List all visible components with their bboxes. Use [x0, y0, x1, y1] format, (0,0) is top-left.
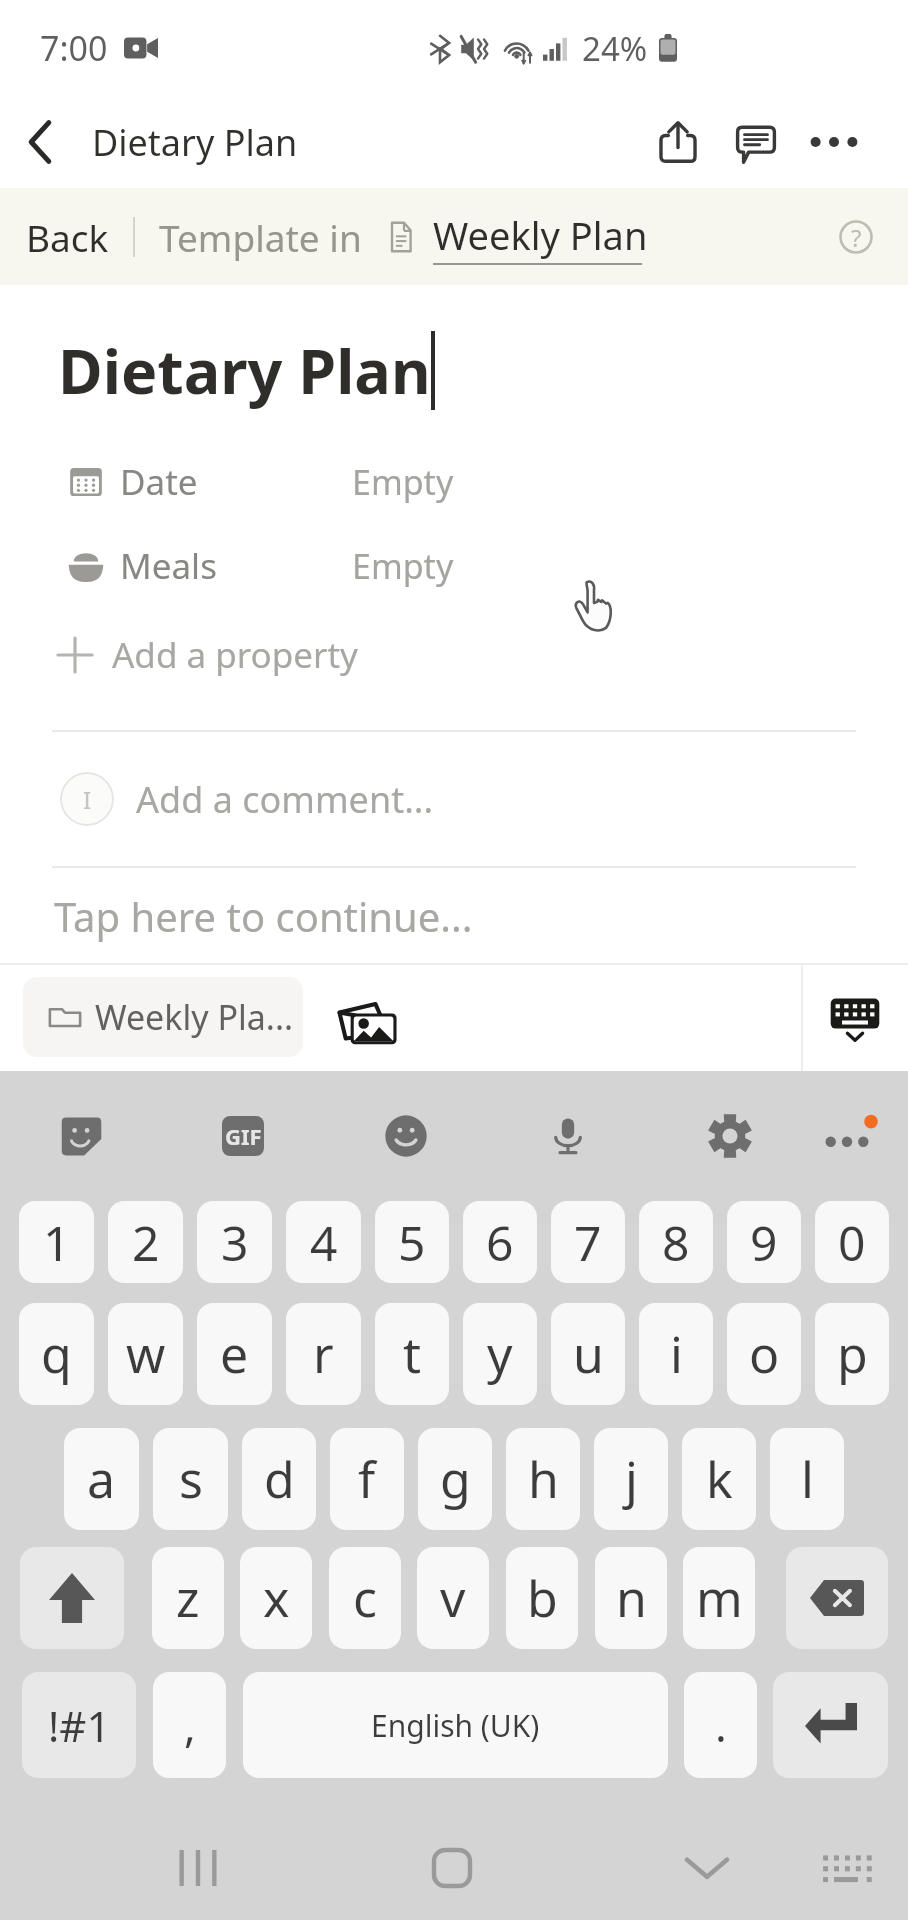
button[interactable]: 6	[463, 1201, 537, 1283]
button[interactable]: Voice input	[538, 1106, 598, 1166]
button[interactable]: Insert image	[328, 984, 408, 1050]
button[interactable]: s	[153, 1428, 228, 1530]
button[interactable]: y	[463, 1303, 537, 1405]
button[interactable]: t	[375, 1303, 449, 1405]
button[interactable]: k	[682, 1428, 756, 1530]
staticText: n	[616, 1564, 647, 1632]
staticText: English (UK)	[371, 1705, 540, 1746]
button[interactable]: x	[240, 1547, 312, 1649]
button[interactable]: Key	[786, 1547, 888, 1649]
button[interactable]: Recents	[160, 1830, 236, 1906]
button[interactable]: p	[815, 1303, 889, 1405]
button[interactable]: 9	[727, 1201, 801, 1283]
button[interactable]: g	[418, 1428, 492, 1530]
staticText: 6	[486, 1210, 514, 1275]
button[interactable]: 8	[639, 1201, 713, 1283]
button[interactable]: 5	[375, 1201, 449, 1283]
button[interactable]: c	[329, 1547, 401, 1649]
staticText: f	[358, 1445, 376, 1513]
button[interactable]: Home	[414, 1830, 490, 1906]
button[interactable]: GIF	[213, 1106, 273, 1166]
staticText: I	[83, 783, 92, 816]
button[interactable]: i	[639, 1303, 713, 1405]
button[interactable]: Weekly Pla...	[23, 977, 303, 1057]
staticText: k	[706, 1445, 733, 1513]
button[interactable]: 7	[551, 1201, 625, 1283]
button[interactable]: a	[64, 1428, 139, 1530]
staticText: g	[440, 1445, 471, 1513]
staticText: 2	[132, 1210, 160, 1275]
staticText: Add a comment...	[136, 775, 434, 824]
staticText: h	[528, 1445, 559, 1513]
button[interactable]: I	[60, 772, 434, 826]
button[interactable]: .	[684, 1672, 757, 1778]
staticText: Template in	[159, 212, 362, 262]
button[interactable]: v	[417, 1547, 489, 1649]
staticText: .	[715, 1695, 727, 1755]
button[interactable]: b	[506, 1547, 578, 1649]
button[interactable]: m	[683, 1547, 755, 1649]
button[interactable]: 0	[815, 1201, 889, 1283]
button[interactable]: Switch keyboard	[808, 1830, 884, 1906]
button[interactable]: Emoji	[376, 1106, 436, 1166]
staticText: c	[353, 1564, 377, 1632]
staticText: GIF	[225, 1121, 262, 1151]
staticText: w	[126, 1320, 166, 1388]
button[interactable]: w	[108, 1303, 183, 1405]
staticText: Date	[120, 458, 198, 506]
button[interactable]: o	[727, 1303, 801, 1405]
button[interactable]: j	[594, 1428, 668, 1530]
staticText: !#1	[48, 1697, 111, 1754]
staticText: u	[573, 1320, 604, 1388]
button[interactable]: 4	[286, 1201, 361, 1283]
staticText: b	[527, 1564, 558, 1632]
staticText: r	[313, 1320, 334, 1388]
button[interactable]: Stickers	[51, 1106, 111, 1166]
staticText: Dietary Plan	[92, 118, 298, 167]
button[interactable]: More options	[795, 103, 873, 181]
button[interactable]: Key	[20, 1547, 124, 1649]
staticText: Tap here to continue...	[54, 889, 473, 943]
button[interactable]: d	[242, 1428, 316, 1530]
button[interactable]: Key	[773, 1672, 888, 1778]
button[interactable]: f	[330, 1428, 404, 1530]
staticText: Meals	[120, 542, 217, 590]
button[interactable]: Hide keyboard	[669, 1830, 745, 1906]
button[interactable]: Share	[639, 103, 717, 181]
staticText: y	[487, 1320, 513, 1388]
button[interactable]: More options	[817, 1106, 877, 1166]
button[interactable]: Meals	[0, 534, 908, 598]
staticText: 0	[838, 1210, 866, 1275]
button[interactable]: 2	[108, 1201, 183, 1283]
staticText: s	[179, 1445, 203, 1513]
staticText: v	[440, 1564, 466, 1632]
button[interactable]: 3	[197, 1201, 272, 1283]
button[interactable]: Weekly Plan	[386, 209, 648, 265]
staticText: m	[696, 1564, 743, 1632]
staticText: 7:00	[40, 25, 108, 71]
button[interactable]: u	[551, 1303, 625, 1405]
staticText: Empty	[352, 459, 454, 505]
button[interactable]: !#1	[22, 1672, 136, 1778]
button[interactable]: l	[770, 1428, 844, 1530]
button[interactable]: Date	[0, 450, 908, 514]
button[interactable]: n	[595, 1547, 667, 1649]
button[interactable]: ,	[153, 1672, 226, 1778]
button[interactable]: Help	[824, 205, 888, 269]
button[interactable]: Hide keyboard	[801, 963, 908, 1071]
button[interactable]: h	[506, 1428, 580, 1530]
button[interactable]: q	[19, 1303, 94, 1405]
button[interactable]: Back	[0, 102, 80, 182]
button[interactable]: English (UK)	[243, 1672, 668, 1778]
button[interactable]: e	[197, 1303, 272, 1405]
button[interactable]: z	[152, 1547, 224, 1649]
staticText: i	[670, 1320, 683, 1388]
button[interactable]: Back	[26, 212, 109, 262]
button[interactable]: Keyboard settings	[700, 1106, 760, 1166]
button[interactable]: Add a property	[58, 631, 358, 679]
button[interactable]: r	[286, 1303, 361, 1405]
staticText: e	[220, 1320, 249, 1388]
staticText: 3	[221, 1210, 249, 1275]
button[interactable]: 1	[19, 1201, 94, 1283]
button[interactable]: Comments	[717, 103, 795, 181]
